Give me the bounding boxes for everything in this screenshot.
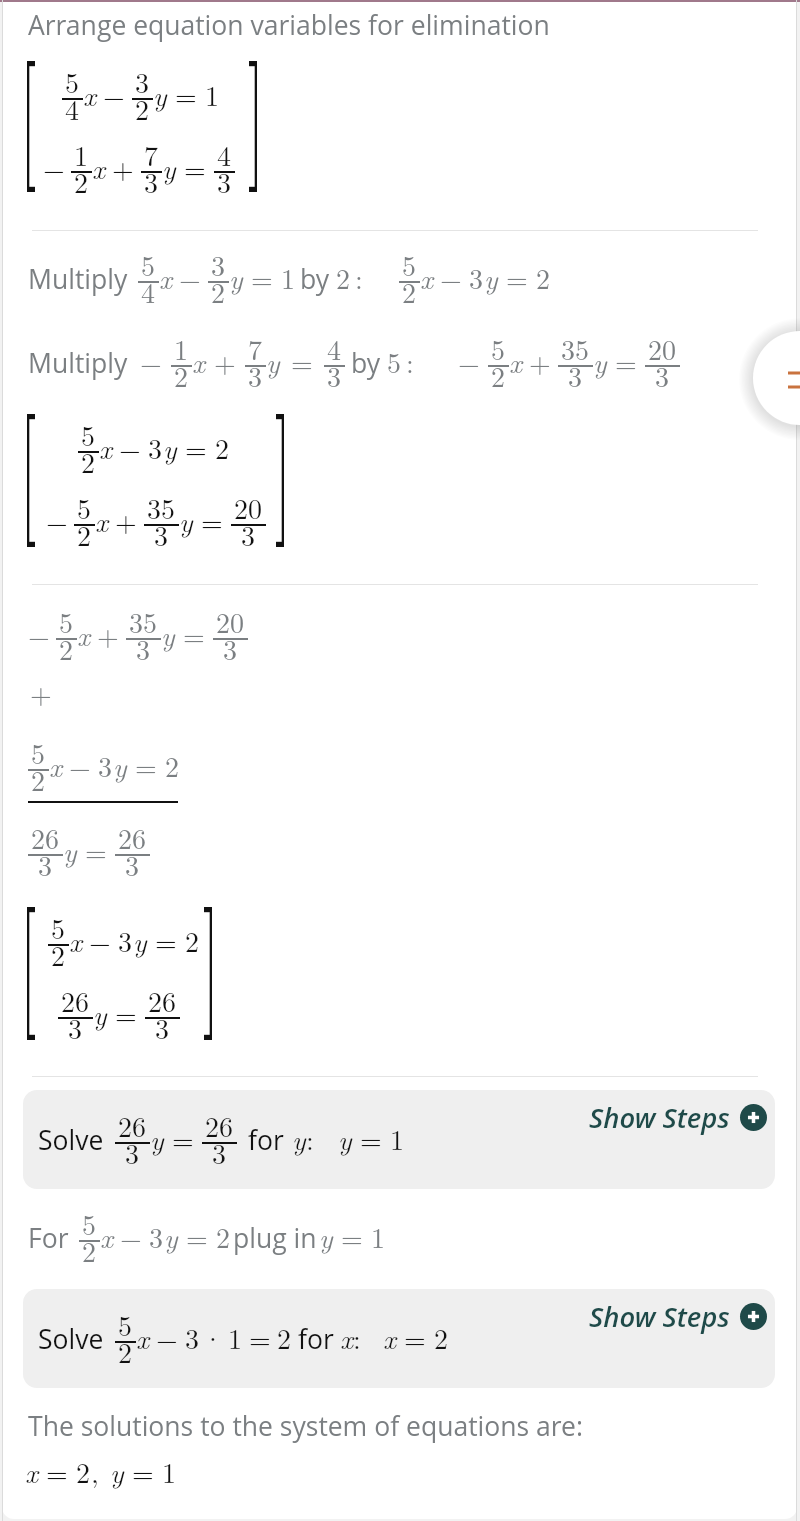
staticText: 26 [118,1105,147,1145]
staticText: = [46,1451,68,1491]
staticText: y [110,1451,124,1491]
staticText: y [484,257,498,297]
staticText: 20 [234,487,263,527]
staticText: = [506,257,528,297]
staticText: Solve [38,1321,104,1357]
staticText: : [355,257,363,297]
staticText: y [150,1118,164,1158]
staticText: = [115,993,137,1033]
staticText: : [353,1317,361,1357]
staticText: + [97,614,119,654]
staticText: − [156,1317,178,1357]
staticText: = [291,341,313,381]
staticText: = [132,1451,154,1491]
staticText: The solutions to the system of equations… [28,1408,583,1444]
staticText: x [83,74,96,114]
staticText: 35 [129,601,158,641]
staticText: 20 [648,328,677,368]
staticText: : [406,341,414,381]
staticText: 26 [148,980,177,1020]
staticText: 3 [212,1132,227,1172]
staticText: − [119,427,141,467]
staticText: + [30,672,52,712]
staticText: y [161,614,175,654]
staticText: 2 [51,934,66,974]
staticText: x [509,341,522,381]
staticText: 3 [217,161,232,201]
staticText: 5 [81,414,96,454]
staticText: 35 [147,487,176,527]
staticText: = [249,1317,271,1357]
staticText: x [99,427,112,467]
staticText: 2 [82,1230,97,1270]
staticText: Solve [38,1122,104,1158]
staticText: = [155,920,177,960]
staticText: x [136,1317,149,1357]
staticText: for [298,1321,334,1357]
staticText: = [172,1118,194,1158]
staticText: 3 [149,1216,164,1256]
staticText: = [341,1216,363,1256]
staticText: 3 [327,355,342,395]
staticText: x [49,745,62,785]
staticText: y [229,257,243,297]
staticText: Multiply [28,261,128,297]
staticText: 3 [223,628,238,668]
staticText: = [201,500,223,540]
button[interactable]: Solve [23,1289,775,1388]
button[interactable]: Solve [23,1090,775,1189]
staticText: 4 [327,328,342,368]
staticText: 3 [655,355,670,395]
staticText: = [404,1317,426,1357]
staticText: y [292,1118,306,1158]
staticText: y [179,500,193,540]
staticText: − [46,500,68,540]
staticText: + [214,341,236,381]
staticText: 35 [561,328,590,368]
staticText: 26 [205,1105,234,1145]
staticText: 3 [125,1132,140,1172]
staticText: 3 [98,745,113,785]
staticText: 2 [118,1331,133,1371]
staticText: y [338,1118,352,1158]
staticText: 1 [281,257,296,297]
staticText: y [113,745,127,785]
staticText: Multiply [28,345,128,381]
staticText: 1 [205,74,220,114]
button[interactable]: Show Steps [586,1295,770,1338]
staticText: y [593,341,607,381]
staticText: , [91,1451,99,1491]
staticText: 5 [82,1203,97,1243]
button[interactable]: Equation tools [753,331,800,425]
staticText: 26 [118,817,147,857]
staticText: x [192,341,205,381]
staticText: 7 [248,328,263,368]
staticText: = [175,74,197,114]
staticText: x [92,147,105,187]
staticText: 2 [31,759,46,799]
staticText: − [28,614,50,654]
staticText: 5 [31,732,46,772]
staticText: 5 [59,601,74,641]
staticText: + [115,500,137,540]
staticText: = [184,147,206,187]
staticText: 5 [118,1304,133,1344]
staticText: 2 [216,1216,231,1256]
staticText: 3 [148,427,163,467]
staticText: by [351,345,381,381]
staticText: y [162,147,176,187]
staticText: · [202,1317,224,1357]
staticText: − [69,745,91,785]
staticText: x [420,257,433,297]
staticText: − [103,74,125,114]
staticText: 3 [118,920,133,960]
staticText: = [186,1216,208,1256]
staticText: plug in [233,1220,317,1256]
staticText: x [77,614,90,654]
staticText: x [25,1451,38,1491]
staticText: 26 [61,980,90,1020]
staticText: Show Steps [589,1298,730,1335]
staticText: = [360,1118,382,1158]
staticText: 4 [141,271,156,311]
button[interactable]: Show Steps [586,1096,770,1139]
